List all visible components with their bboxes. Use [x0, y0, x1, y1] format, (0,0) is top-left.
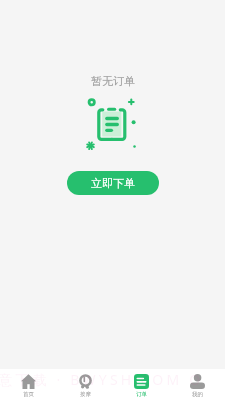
staticText: 首页 — [23, 391, 34, 398]
button[interactable]: 订单 — [113, 369, 169, 400]
button[interactable]: 立即下单 — [67, 171, 159, 195]
button[interactable]: 首页 — [0, 369, 57, 400]
staticText: 按摩 — [80, 391, 91, 398]
button[interactable]: 我的 — [169, 369, 225, 400]
staticText: 意下载 · BWYSH.COM O — [0, 370, 204, 389]
staticText: 订单 — [136, 391, 147, 398]
staticText: 立即下单 — [91, 176, 135, 190]
staticText: 暂无订单 — [91, 74, 135, 88]
button[interactable]: 按摩 — [57, 369, 113, 400]
staticText: 我的 — [192, 391, 203, 398]
